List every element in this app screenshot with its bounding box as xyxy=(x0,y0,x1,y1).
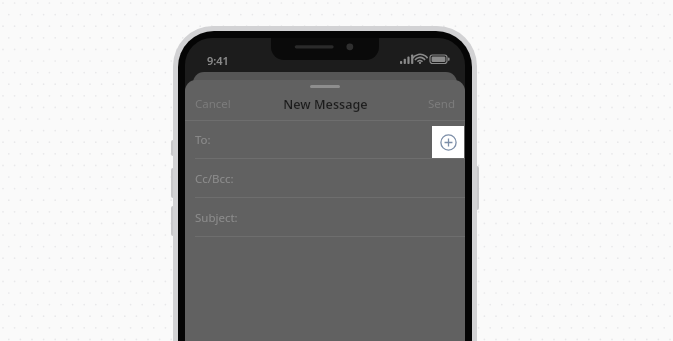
button[interactable]: Send xyxy=(415,93,455,115)
staticText: Cc/Bcc: xyxy=(195,171,234,187)
staticText: To: xyxy=(195,132,211,148)
button[interactable]: To: xyxy=(185,120,465,159)
button[interactable]: Cc/Bcc: xyxy=(185,159,465,198)
button[interactable]: Add contact xyxy=(432,126,464,158)
button[interactable]: Subject: xyxy=(185,198,465,237)
button[interactable]: Cancel xyxy=(195,93,247,115)
staticText: Cancel xyxy=(195,96,231,112)
staticText: Subject: xyxy=(195,210,238,226)
staticText: New Message xyxy=(283,96,368,113)
staticText: 9:41 xyxy=(207,53,229,68)
staticText: Send xyxy=(428,96,455,112)
